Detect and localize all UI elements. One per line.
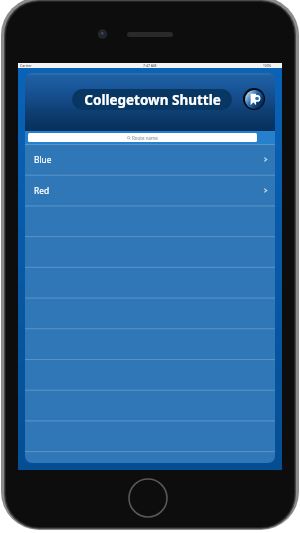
staticText: 100%: [263, 64, 272, 68]
staticText: 7:47 AM: [143, 63, 157, 68]
staticText: Carrier: [20, 63, 32, 68]
staticText: Red: [34, 185, 50, 196]
button[interactable]: Collegetown Shuttle: [72, 89, 232, 110]
button[interactable]: Blue: [25, 144, 275, 175]
staticText: Route name: [132, 135, 158, 141]
button[interactable]: Route name: [28, 133, 257, 142]
button[interactable]: Favorites: [243, 88, 265, 110]
staticText: Blue: [34, 154, 52, 165]
staticText: Collegetown Shuttle: [84, 91, 221, 109]
button[interactable]: Red: [25, 175, 275, 206]
